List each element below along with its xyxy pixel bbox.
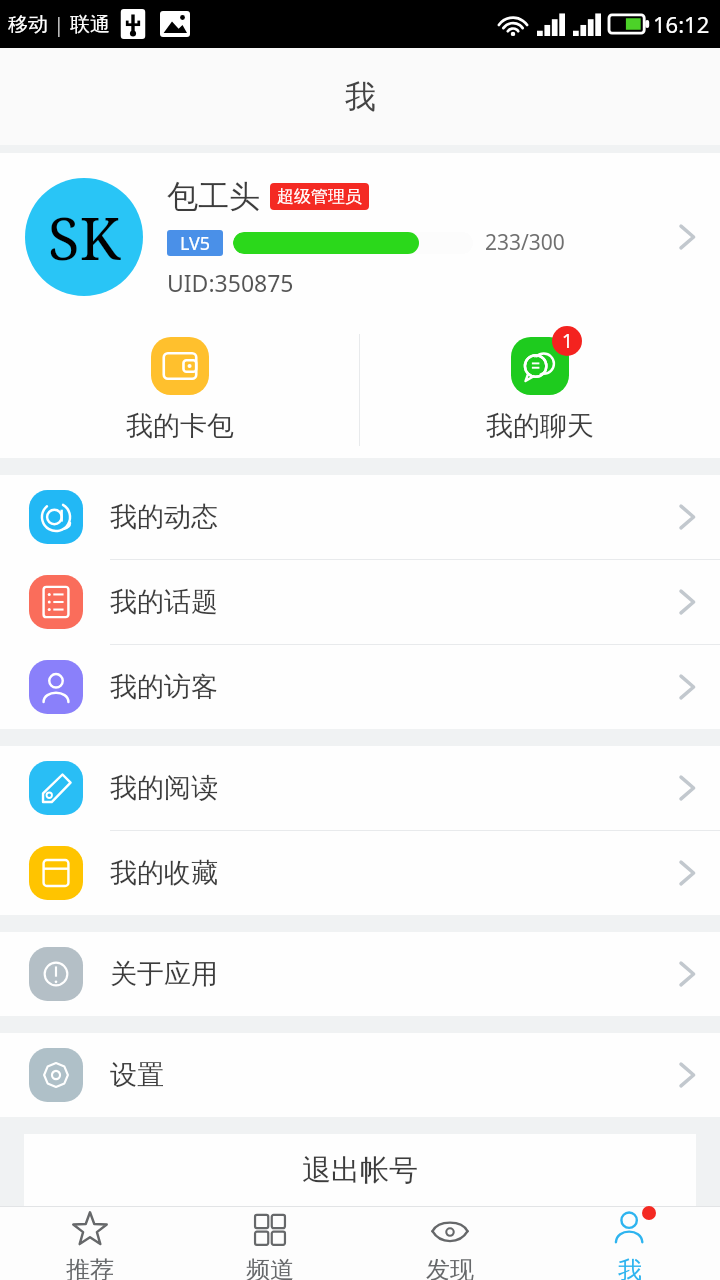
staticText: 我	[618, 1255, 642, 1280]
staticText: 我的收藏	[110, 856, 672, 890]
staticText: 我的聊天	[486, 409, 594, 443]
staticText: 关于应用	[110, 957, 672, 991]
staticText: 我	[345, 77, 376, 116]
staticText: |	[48, 11, 70, 38]
button[interactable]: 关于应用	[0, 932, 720, 1016]
staticText: 16:12	[653, 9, 710, 39]
button[interactable]: 我的访客	[0, 645, 720, 729]
staticText: 我的访客	[110, 670, 672, 704]
staticText: 包工头	[167, 177, 260, 216]
button[interactable]: 我的动态	[0, 475, 720, 559]
staticText: 发现	[426, 1255, 474, 1280]
button[interactable]: 我的收藏	[0, 831, 720, 915]
staticText: 1	[562, 328, 573, 354]
button[interactable]: 我的卡包	[0, 321, 359, 458]
button[interactable]: 退出帐号	[24, 1134, 696, 1206]
staticText: 我的动态	[110, 500, 672, 534]
button[interactable]: 设置	[0, 1033, 720, 1117]
staticText: 我的话题	[110, 585, 672, 619]
staticText: UID:350875	[167, 267, 294, 298]
staticText: 联通	[70, 12, 110, 37]
staticText: 超级管理员	[277, 186, 362, 207]
staticText: 我的阅读	[110, 771, 672, 805]
button[interactable]: 我的话题	[0, 560, 720, 644]
staticText: 我的卡包	[126, 409, 234, 443]
button[interactable]: 1	[360, 321, 720, 458]
staticText: 频道	[246, 1255, 294, 1280]
staticText: 推荐	[66, 1255, 114, 1280]
staticText: LV5	[180, 231, 211, 256]
staticText: SK	[48, 198, 121, 277]
staticText: 233/300	[485, 228, 565, 257]
staticText: 移动	[8, 12, 48, 37]
staticText: 退出帐号	[302, 1152, 418, 1189]
button[interactable]: 我	[540, 1207, 720, 1280]
staticText: 设置	[110, 1058, 672, 1092]
button[interactable]: 发现	[360, 1207, 540, 1280]
button[interactable]: 推荐	[0, 1207, 180, 1280]
button[interactable]: 我的阅读	[0, 746, 720, 830]
button[interactable]: SK	[0, 153, 720, 321]
button[interactable]: 频道	[180, 1207, 360, 1280]
